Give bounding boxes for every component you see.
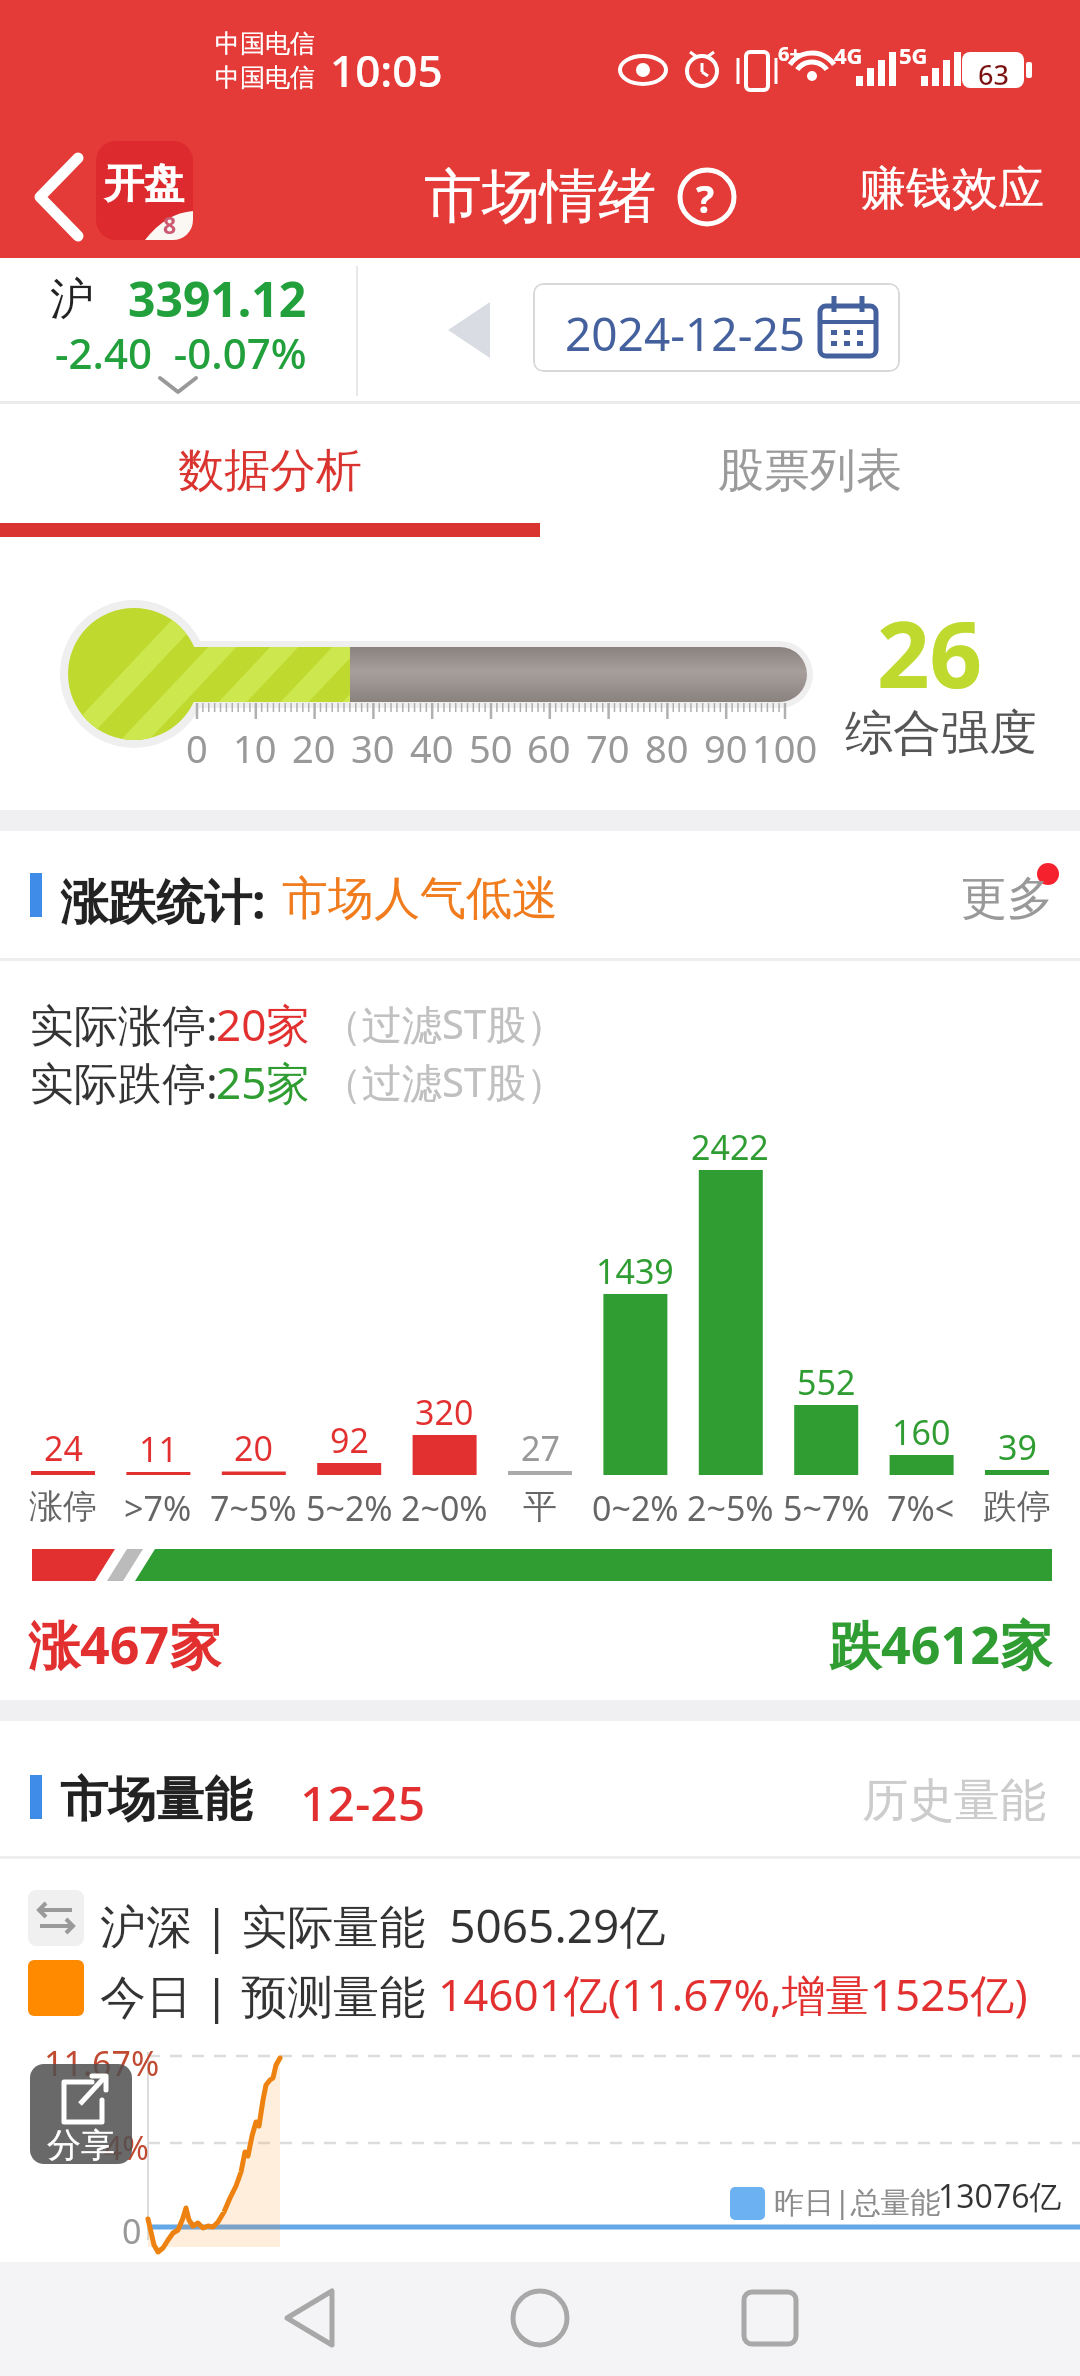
staticText: 14601亿(11.67%,增量1525亿) [438, 1964, 1028, 2024]
staticText: 中国电信 [215, 28, 315, 59]
button[interactable] [230, 2262, 430, 2376]
staticText: 60 [527, 722, 571, 774]
staticText: 90 [704, 722, 748, 774]
staticText: 沪深 | 实际量能 5065.29亿 [100, 1894, 666, 1957]
staticText: 更多 [961, 870, 1053, 928]
staticText: 2~0% [401, 1485, 488, 1531]
staticText: 涨467家 [28, 1608, 222, 1679]
staticText: 0 [122, 2208, 142, 2254]
staticText: 5~2% [306, 1485, 393, 1531]
staticText: 92 [330, 1417, 369, 1463]
staticText: 2~5% [687, 1485, 774, 1531]
staticText: 沪 [50, 272, 94, 327]
staticText: 24 [44, 1425, 83, 1471]
staticText: 8 [163, 209, 177, 240]
staticText: 10:05 [330, 40, 443, 100]
staticText: 160 [892, 1409, 951, 1455]
staticText: 股票列表 [718, 442, 902, 500]
staticText: 27 [521, 1425, 560, 1471]
staticText: 12-25 [300, 1770, 426, 1835]
staticText: 3391.12 [128, 266, 307, 331]
staticText: 20家 [216, 994, 311, 1054]
staticText: 5~7% [783, 1485, 870, 1531]
staticText: 2024-12-25 [565, 302, 806, 365]
button[interactable] [533, 283, 900, 372]
button[interactable]: 更多 [961, 870, 1053, 928]
button[interactable] [677, 167, 737, 227]
staticText: ? [696, 172, 715, 224]
staticText: 20 [292, 722, 336, 774]
staticText: 25家 [216, 1052, 311, 1112]
button[interactable] [650, 2262, 850, 2376]
staticText: 20 [234, 1425, 273, 1471]
button[interactable]: 数据分析 [0, 404, 540, 537]
staticText: 分享 [47, 2124, 115, 2164]
staticText: 跌4612家 [829, 1608, 1052, 1679]
staticText: 4G [834, 40, 863, 70]
staticText: 市场量能 [60, 1770, 252, 1830]
staticText: 平 [523, 1485, 557, 1528]
staticText: 市场人气低迷 [282, 870, 558, 928]
staticText: 40 [410, 722, 454, 774]
staticText: 13076亿 [938, 2174, 1062, 2218]
staticText: 552 [797, 1359, 856, 1405]
button[interactable] [20, 150, 100, 245]
staticText: 11.67% [44, 2040, 160, 2086]
button[interactable]: 分享 [30, 2064, 132, 2164]
staticText: 涨跌统计: [60, 868, 266, 934]
staticText: 5G [899, 40, 928, 70]
staticText: 昨日|总量能 [774, 2181, 941, 2222]
button[interactable]: 历史量能 [862, 1772, 1046, 1830]
staticText: 综合强度 [845, 703, 1037, 763]
button[interactable]: 赚钱效应 [860, 160, 1044, 218]
button[interactable] [440, 2262, 640, 2376]
staticText: 39 [998, 1424, 1037, 1470]
staticText: 6+ [778, 40, 801, 67]
button[interactable]: 股票列表 [540, 404, 1080, 537]
staticText: 实际涨停: [30, 994, 218, 1054]
staticText: 0~2% [592, 1485, 679, 1531]
staticText: 开盘 [104, 158, 184, 208]
staticText: 80 [645, 722, 689, 774]
staticText: 中国电信 [215, 62, 315, 93]
staticText: （过滤ST股） [322, 996, 567, 1051]
staticText: 63 [978, 56, 1009, 93]
staticText: 数据分析 [178, 442, 362, 500]
staticText: 实际跌停: [30, 1052, 218, 1112]
staticText: 100 [752, 722, 818, 774]
staticText: 0 [186, 722, 208, 774]
staticText: 26 [877, 590, 983, 715]
staticText: -2.40 -0.07% [55, 324, 307, 381]
staticText: 1439 [596, 1248, 674, 1294]
staticText: 50 [469, 722, 513, 774]
staticText: 7~5% [210, 1485, 297, 1531]
staticText: 历史量能 [862, 1772, 1046, 1830]
staticText: （过滤ST股） [322, 1054, 567, 1109]
staticText: 10 [233, 722, 277, 774]
staticText: 4% [104, 2126, 149, 2170]
staticText: 赚钱效应 [860, 160, 1044, 218]
staticText: 跌停 [983, 1485, 1051, 1528]
staticText: 30 [351, 722, 395, 774]
staticText: 今日 | 预测量能 [100, 1964, 438, 2027]
staticText: 市场情绪 [424, 160, 656, 233]
staticText: 70 [586, 722, 630, 774]
staticText: 涨停 [29, 1485, 97, 1528]
staticText: 7%< [887, 1485, 955, 1531]
staticText: 2422 [691, 1124, 769, 1170]
staticText: >7% [124, 1485, 192, 1531]
staticText: 11 [139, 1426, 178, 1472]
staticText: 320 [415, 1389, 474, 1435]
